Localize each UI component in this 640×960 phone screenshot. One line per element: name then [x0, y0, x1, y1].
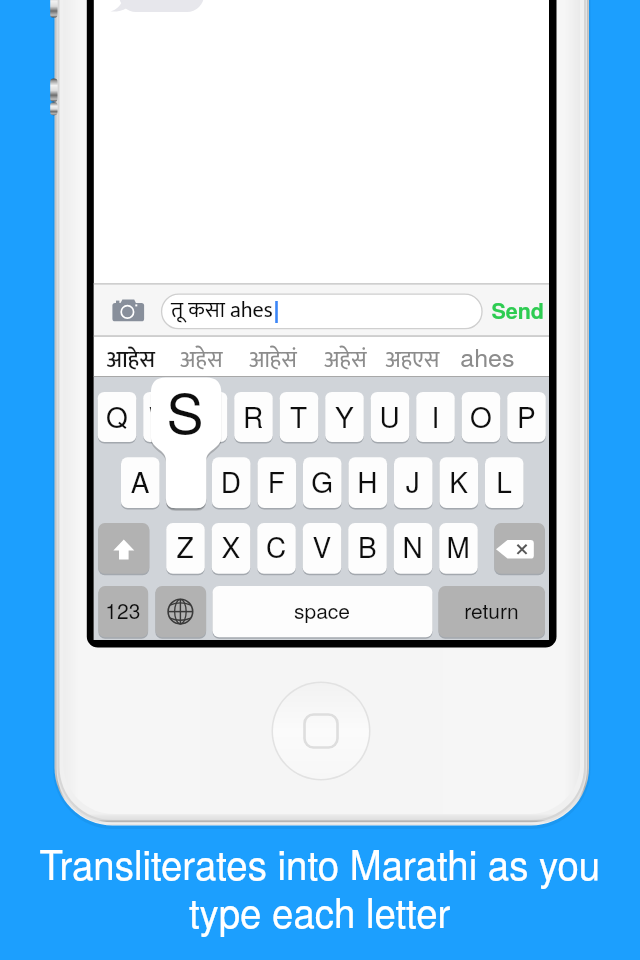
button[interactable]: आहेस — [98, 337, 164, 377]
button[interactable]: ahes — [455, 337, 521, 377]
button[interactable]: C — [257, 523, 296, 574]
button[interactable]: V — [303, 523, 342, 574]
button[interactable]: Q — [98, 392, 137, 442]
button[interactable]: space — [213, 586, 433, 637]
button[interactable]: Y — [325, 392, 364, 442]
button[interactable]: M — [439, 523, 478, 574]
button[interactable]: Take photo — [111, 298, 145, 324]
button[interactable]: R — [234, 392, 273, 442]
button[interactable]: अहेस — [169, 337, 235, 377]
button[interactable]: Message input field — [162, 294, 482, 329]
button[interactable]: T — [280, 392, 319, 442]
button[interactable]: Home — [272, 682, 370, 780]
button[interactable]: P — [507, 392, 546, 442]
button[interactable]: X — [212, 523, 251, 574]
button[interactable]: I — [416, 392, 455, 442]
button[interactable]: H — [349, 457, 388, 508]
button[interactable]: Shift — [98, 523, 149, 574]
button[interactable]: G — [303, 457, 342, 508]
button[interactable]: Backspace — [494, 523, 545, 574]
button[interactable]: return — [439, 586, 546, 637]
button[interactable]: Switch keyboard language — [155, 586, 206, 637]
button[interactable]: Z — [166, 523, 205, 574]
button[interactable]: S — [167, 457, 206, 508]
button[interactable]: D — [212, 457, 251, 508]
button[interactable]: 123 numbers — [98, 586, 148, 637]
button[interactable]: आहेसं — [240, 337, 306, 377]
button[interactable]: U — [371, 392, 410, 442]
button[interactable]: K — [440, 457, 479, 508]
button[interactable]: A — [121, 457, 160, 508]
button[interactable]: J — [394, 457, 433, 508]
button[interactable]: Send — [488, 298, 544, 324]
button[interactable]: W — [143, 392, 182, 442]
button[interactable]: B — [348, 523, 387, 574]
button[interactable]: L — [485, 457, 524, 508]
button[interactable]: अहएस — [380, 337, 446, 377]
button[interactable]: F — [258, 457, 297, 508]
button[interactable]: O — [462, 392, 501, 442]
button[interactable]: अहेसं — [313, 337, 379, 377]
button[interactable]: E — [189, 392, 228, 442]
button[interactable]: N — [394, 523, 433, 574]
